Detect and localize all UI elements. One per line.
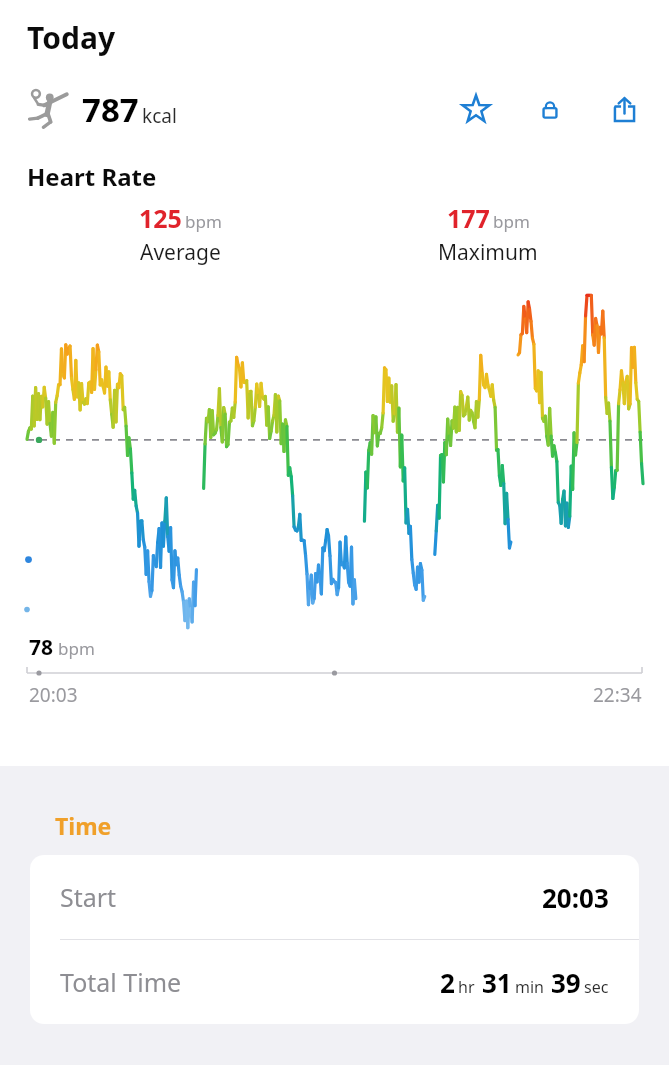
button[interactable]: Share bbox=[601, 86, 647, 132]
staticText: Start bbox=[60, 880, 117, 914]
staticText: 31 bbox=[482, 965, 512, 1000]
button[interactable]: Start bbox=[30, 855, 639, 939]
staticText: Total Time bbox=[60, 965, 182, 999]
staticText: 177 bbox=[447, 201, 490, 235]
staticText: Today bbox=[27, 17, 116, 58]
staticText: hr bbox=[458, 976, 475, 998]
staticText: 2 bbox=[440, 965, 455, 1000]
staticText: Time bbox=[55, 810, 112, 841]
staticText: 78 bbox=[29, 633, 54, 662]
staticText: 39 bbox=[551, 965, 581, 1000]
button[interactable]: Favourite bbox=[453, 86, 499, 132]
staticText: bpm bbox=[58, 637, 95, 660]
staticText: 22:34 bbox=[593, 682, 642, 708]
staticText: 20:03 bbox=[29, 682, 78, 708]
staticText: bpm bbox=[185, 210, 222, 233]
button[interactable]: Total Time bbox=[30, 940, 639, 1024]
staticText: bpm bbox=[493, 210, 530, 233]
staticText: sec bbox=[584, 976, 609, 998]
staticText: 125 bbox=[139, 201, 182, 235]
staticText: kcal bbox=[142, 103, 177, 129]
button[interactable]: Lock bbox=[527, 86, 573, 132]
staticText: Average bbox=[140, 238, 221, 267]
staticText: min bbox=[515, 976, 544, 998]
staticText: 787 bbox=[82, 87, 139, 132]
staticText: Maximum bbox=[438, 238, 538, 267]
staticText: 20:03 bbox=[542, 880, 609, 915]
staticText: Heart Rate bbox=[27, 160, 157, 193]
